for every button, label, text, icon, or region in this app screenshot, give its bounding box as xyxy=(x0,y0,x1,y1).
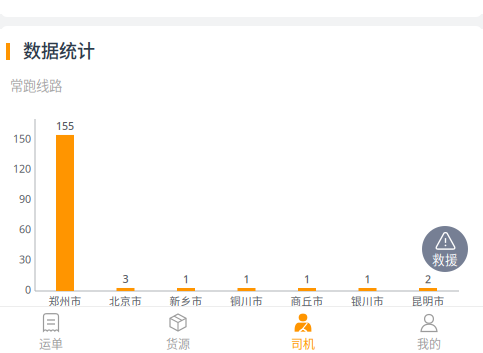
staticText: 30 xyxy=(19,252,31,266)
staticText: 150 xyxy=(13,131,31,146)
staticText: 铜川市 xyxy=(230,293,263,308)
staticText: 90 xyxy=(19,192,31,206)
staticText: 运单 xyxy=(39,335,63,352)
staticText: 155 xyxy=(56,119,74,133)
staticText: 60 xyxy=(19,222,31,236)
staticText: 2 xyxy=(425,272,431,286)
staticText: 我的 xyxy=(417,335,441,352)
button[interactable]: 救援 xyxy=(422,226,468,272)
staticText: 1 xyxy=(364,272,370,286)
button[interactable]: 司机 xyxy=(243,306,363,353)
button[interactable]: 货源 xyxy=(118,306,238,353)
staticText: 0 xyxy=(25,282,31,297)
staticText: 货源 xyxy=(166,335,190,352)
staticText: 3 xyxy=(122,272,128,286)
staticText: 昆明市 xyxy=(411,293,444,308)
staticText: 常跑线路 xyxy=(10,75,62,95)
button[interactable]: 运单 xyxy=(0,306,111,353)
staticText: 北京市 xyxy=(109,293,142,308)
staticText: 商丘市 xyxy=(290,293,323,308)
staticText: 120 xyxy=(13,162,31,176)
staticText: 1 xyxy=(183,272,189,286)
staticText: 1 xyxy=(304,272,310,286)
staticText: 1 xyxy=(243,272,249,286)
staticText: 救援 xyxy=(432,250,458,268)
staticText: 数据统计 xyxy=(23,37,95,63)
staticText: 银川市 xyxy=(351,293,384,308)
staticText: 司机 xyxy=(291,335,315,352)
staticText: 新乡市 xyxy=(169,293,202,308)
button[interactable]: 我的 xyxy=(369,306,483,353)
staticText: 郑州市 xyxy=(48,293,81,308)
